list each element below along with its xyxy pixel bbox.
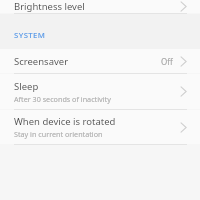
button[interactable]: When device is rotated (0, 110, 200, 144)
staticText: Off (161, 56, 173, 67)
staticText: Screensaver (14, 55, 69, 68)
staticText: SYSTEM (14, 30, 46, 41)
button[interactable]: Brightness level (0, 0, 200, 13)
staticText: Brightness level (14, 0, 180, 13)
staticText: Stay in current orientation (14, 129, 103, 139)
staticText: After 30 seconds of inactivity (14, 94, 111, 104)
button[interactable]: Sleep (0, 74, 200, 109)
staticText: Sleep (14, 80, 39, 93)
staticText: When device is rotated (14, 115, 116, 128)
button[interactable]: Screensaver (0, 49, 200, 73)
